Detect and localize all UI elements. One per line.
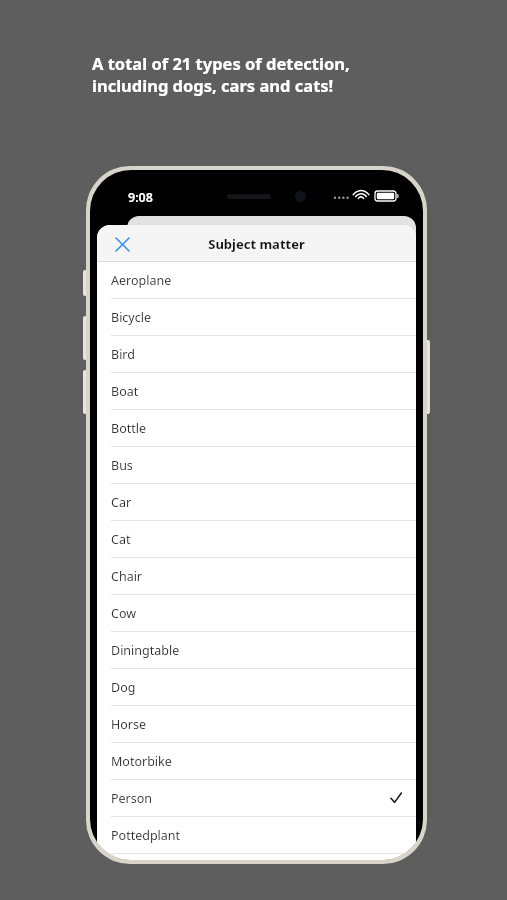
staticText: Person xyxy=(111,790,153,807)
staticText: Cat xyxy=(111,531,131,548)
staticText: Aeroplane xyxy=(111,272,172,289)
button[interactable]: Aeroplane xyxy=(97,262,416,299)
staticText: Bicycle xyxy=(111,309,152,326)
staticText: Cow xyxy=(111,605,137,622)
staticText: Bird xyxy=(111,346,135,363)
button[interactable]: Cat xyxy=(97,521,416,558)
button[interactable]: Diningtable xyxy=(97,632,416,669)
staticText: Diningtable xyxy=(111,642,180,659)
staticText: Car xyxy=(111,494,132,511)
button[interactable]: Close xyxy=(105,227,139,261)
button[interactable]: Bicycle xyxy=(97,299,416,336)
staticText: Bus xyxy=(111,457,133,474)
staticText: including dogs, cars and cats! xyxy=(92,74,334,96)
staticText: Boat xyxy=(111,383,139,400)
staticText: A total of 21 types of detection, xyxy=(92,52,350,74)
staticText: Motorbike xyxy=(111,753,172,770)
button[interactable]: Cow xyxy=(97,595,416,632)
button[interactable]: Bottle xyxy=(97,410,416,447)
staticText: Bottle xyxy=(111,420,146,437)
button[interactable]: Bus xyxy=(97,447,416,484)
button[interactable]: Pottedplant xyxy=(97,817,416,854)
staticText: Dog xyxy=(111,679,136,696)
button[interactable]: Horse xyxy=(97,706,416,743)
staticText: Chair xyxy=(111,568,143,585)
staticText: Horse xyxy=(111,716,147,733)
button[interactable]: Car xyxy=(97,484,416,521)
button[interactable]: Chair xyxy=(97,558,416,595)
staticText: Pottedplant xyxy=(111,827,181,844)
button[interactable]: Motorbike xyxy=(97,743,416,780)
staticText: 9:08 xyxy=(128,189,153,206)
button[interactable]: Person xyxy=(97,780,416,817)
button[interactable]: Boat xyxy=(97,373,416,410)
button[interactable]: Bird xyxy=(97,336,416,373)
button[interactable]: Dog xyxy=(97,669,416,706)
button[interactable]: Sheep xyxy=(97,854,416,860)
staticText: Subject matter xyxy=(208,235,305,253)
